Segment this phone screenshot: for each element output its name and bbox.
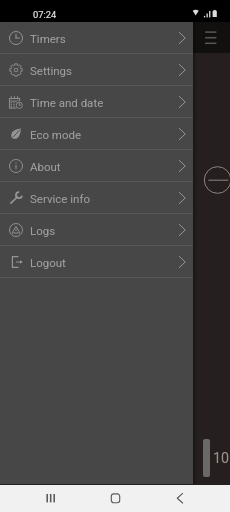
button[interactable]: Open navigation menu: [203, 27, 223, 47]
staticText: Logout: [30, 256, 66, 269]
staticText: Timers: [30, 32, 66, 45]
staticText: About: [30, 160, 61, 173]
button[interactable]: Time and date: [0, 86, 193, 118]
staticText: 10: [213, 450, 230, 467]
staticText: Eco mode: [30, 128, 82, 141]
button[interactable]: Service info: [0, 182, 193, 214]
staticText: Service info: [30, 192, 90, 205]
button[interactable]: Settings: [0, 54, 193, 86]
staticText: Logs: [30, 224, 56, 237]
button[interactable]: Back: [170, 488, 190, 508]
button[interactable]: Home: [105, 488, 125, 508]
staticText: Time and date: [30, 96, 104, 109]
staticText: Settings: [30, 64, 72, 77]
staticText: 07:24: [33, 9, 57, 20]
button[interactable]: Logout: [0, 246, 193, 278]
button[interactable]: Timers: [0, 22, 193, 54]
button[interactable]: Eco mode: [0, 118, 193, 150]
button[interactable]: Recent apps: [41, 488, 61, 508]
button[interactable]: About: [0, 150, 193, 182]
button[interactable]: Logs: [0, 214, 193, 246]
